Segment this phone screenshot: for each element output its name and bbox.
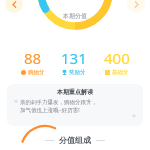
button[interactable]: 88 — [19, 48, 47, 76]
staticText: 本期重点解读 — [57, 88, 93, 96]
staticText: 131 — [61, 48, 87, 68]
staticText: 分值组成 — [59, 135, 91, 145]
staticText: 本期分值 — [63, 12, 87, 20]
button[interactable]: 131 — [59, 48, 89, 76]
staticText: 购物分 — [28, 69, 45, 76]
staticText: 88 — [24, 48, 42, 68]
button[interactable]: 400 — [102, 48, 132, 76]
staticText: 基础分 — [112, 69, 129, 76]
button[interactable]: 上一期 — [5, 0, 23, 13]
staticText: 亲的剁手力爆发，购物分跟升， 加气值也上涨哦~好厉害! — [20, 99, 136, 114]
staticText: 奖励分 — [69, 69, 86, 76]
button[interactable]: 本期重点解读 — [7, 84, 143, 126]
button[interactable]: 下一期 — [127, 0, 145, 13]
staticText: ❞ — [132, 114, 136, 122]
staticText: ❝ — [14, 99, 18, 107]
staticText: 400 — [104, 48, 130, 68]
